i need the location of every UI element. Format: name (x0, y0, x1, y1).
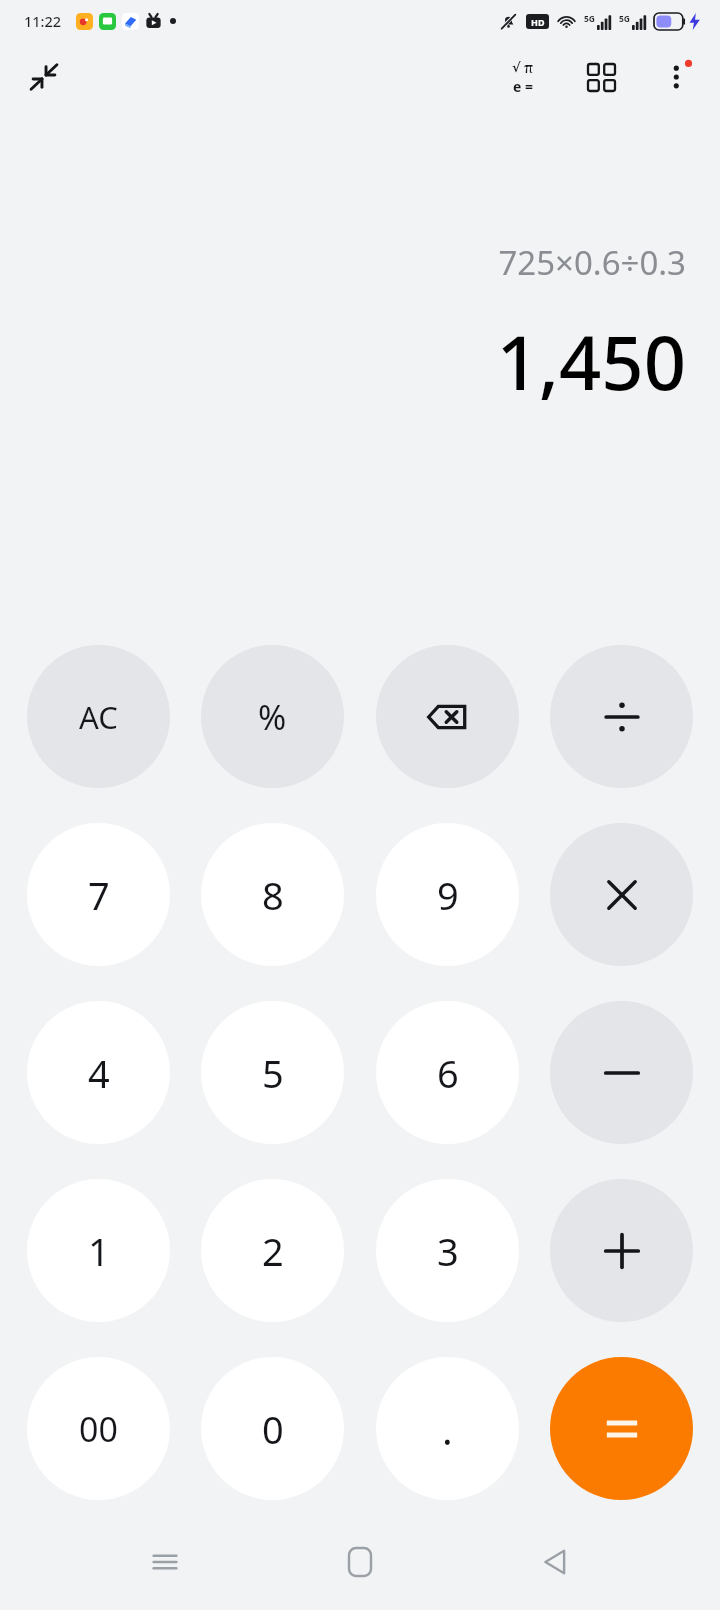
button[interactable]: 00 (27, 1357, 170, 1500)
staticText: . (442, 1402, 453, 1456)
staticText: 9 (437, 869, 459, 921)
button[interactable]: 5 (201, 1001, 344, 1144)
staticText: 5G (584, 13, 596, 25)
button[interactable]: 1 (27, 1179, 170, 1322)
button[interactable]: 8 (201, 823, 344, 966)
button[interactable]: 2 (201, 1179, 344, 1322)
button[interactable]: Minus (550, 1001, 693, 1144)
staticText: 2 (262, 1225, 284, 1277)
staticText: 1 (88, 1225, 110, 1277)
staticText: HD (531, 16, 545, 28)
button[interactable]: Recent apps (135, 1532, 195, 1592)
staticText: 4 (88, 1047, 110, 1099)
button[interactable]: Collapse (18, 51, 70, 103)
staticText: 11:22 (24, 11, 62, 31)
button[interactable]: AC (27, 645, 170, 788)
button[interactable]: 3 (376, 1179, 519, 1322)
button[interactable]: % (201, 645, 344, 788)
staticText: 00 (79, 1406, 118, 1452)
button[interactable]: Multiply (550, 823, 693, 966)
button[interactable]: Divide (550, 645, 693, 788)
button[interactable]: Equals (550, 1357, 693, 1500)
staticText: 8 (262, 869, 284, 921)
staticText: 7 (88, 869, 110, 921)
button[interactable]: Back (525, 1532, 585, 1592)
button[interactable]: . (376, 1357, 519, 1500)
button[interactable]: 9 (376, 823, 519, 966)
button[interactable]: More options (652, 50, 706, 104)
staticText: 5G (619, 13, 631, 25)
button[interactable]: 0 (201, 1357, 344, 1500)
button[interactable]: Scientific mode (496, 50, 550, 104)
staticText: = (525, 77, 534, 96)
staticText: 6 (437, 1047, 459, 1099)
staticText: % (258, 694, 287, 740)
staticText: √ (512, 60, 521, 75)
staticText: 725×0.6÷0.3 (498, 240, 686, 285)
staticText: 1,450 (496, 311, 686, 412)
staticText: AC (79, 696, 118, 738)
staticText: π (524, 58, 534, 77)
button[interactable]: 6 (376, 1001, 519, 1144)
staticText: 3 (437, 1225, 459, 1277)
button[interactable]: Plus (550, 1179, 693, 1322)
staticText: 5 (262, 1047, 284, 1099)
button[interactable]: Home (330, 1532, 390, 1592)
button[interactable]: 4 (27, 1001, 170, 1144)
button[interactable]: Converters (574, 50, 628, 104)
button[interactable]: Backspace (376, 645, 519, 788)
button[interactable]: 7 (27, 823, 170, 966)
staticText: 0 (262, 1403, 284, 1455)
staticText: e (513, 77, 522, 96)
